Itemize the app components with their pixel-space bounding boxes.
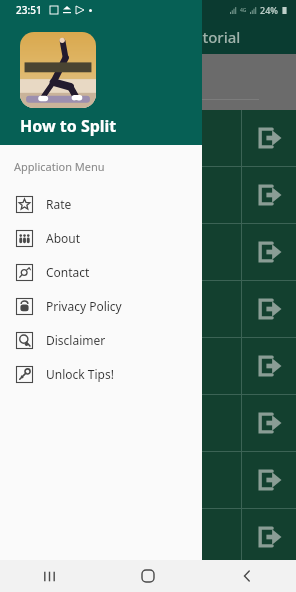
button[interactable]: Privacy Policy [0, 289, 202, 323]
button[interactable]: Side Split Workout [0, 395, 296, 451]
button[interactable]: About [0, 221, 202, 255]
staticText: 4G [240, 7, 247, 14]
button[interactable]: Front Split Basics [0, 110, 296, 166]
button[interactable]: Flexibility Tips [0, 452, 296, 508]
staticText: Split Tutorial [150, 27, 241, 47]
staticText: About [46, 230, 81, 246]
staticText: Split Against the Wall [16, 186, 241, 204]
staticText: Daily Stretch Plan [16, 300, 241, 318]
staticText: Unlock Tips! [46, 366, 114, 382]
button[interactable]: Middle Split Guide [0, 224, 296, 280]
button[interactable]: Home [98, 560, 197, 592]
button[interactable]: Hamstring Stretch [0, 509, 296, 565]
button[interactable]: Unlock Tips! [0, 357, 202, 391]
button[interactable]: Warm Up Routine [0, 338, 296, 394]
staticText: 23:51 [16, 3, 42, 17]
staticText: Disclaimer [46, 332, 106, 348]
staticText: Flexibility Tips [16, 471, 241, 489]
staticText: Contact [46, 264, 90, 280]
staticText: Application Menu [14, 159, 105, 174]
staticText: Warm Up Routine [16, 357, 241, 375]
button[interactable]: Rate [0, 187, 202, 221]
staticText: Rate [46, 196, 72, 212]
staticText: Middle Split Guide [16, 243, 241, 261]
staticText: Privacy Policy [46, 298, 122, 314]
staticText: Side Split Workout [16, 414, 241, 432]
button[interactable]: Contact [0, 255, 202, 289]
staticText: Hamstring Stretch [16, 528, 241, 546]
button[interactable]: Recent apps [0, 560, 98, 592]
staticText: Front Split Basics [16, 129, 241, 147]
button[interactable]: Split Against the Wall [0, 167, 296, 223]
staticText: How to Split [20, 115, 117, 137]
button[interactable]: Daily Stretch Plan [0, 281, 296, 337]
button[interactable]: Back [197, 560, 296, 592]
button[interactable]: Disclaimer [0, 323, 202, 357]
staticText: 24% [260, 4, 278, 16]
